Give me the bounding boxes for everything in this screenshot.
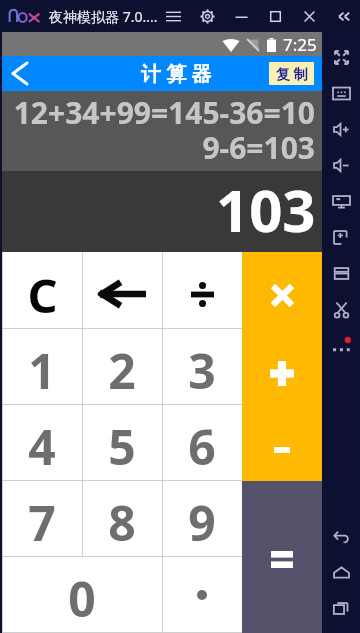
staticText: 0 [68,566,96,631]
button[interactable]: Screenshot [323,183,359,219]
button[interactable]: C [2,252,82,329]
staticText: 5 [108,414,136,479]
button[interactable]: Back [323,518,359,554]
staticText: 7:25 [283,33,317,56]
button[interactable]: 复 制 [269,62,314,85]
staticText: 7 [28,490,56,555]
button[interactable]: 1 [2,329,82,405]
button[interactable]: Home [323,554,359,590]
button[interactable]: 2 [82,329,162,405]
button[interactable]: Divide [162,252,242,329]
staticText: 计 算 器 [141,60,212,87]
button[interactable]: Minus [242,405,322,481]
button[interactable]: Back [2,56,37,91]
button[interactable]: 6 [162,405,242,481]
staticText: 12+34+99=145-36=10 9-6=103 [13,92,315,168]
button[interactable]: Install APK [323,219,359,255]
staticText: 3 [188,338,216,403]
button[interactable]: Fullscreen [323,39,359,75]
staticText: 1 [28,338,56,403]
button[interactable]: Recents [323,590,359,626]
button[interactable]: 8 [82,481,162,557]
button[interactable]: 7 [2,481,82,557]
button[interactable]: Collapse sidebar [326,0,360,32]
staticText: 2 [108,338,136,403]
button[interactable]: 0 [2,557,162,633]
button[interactable]: 3 [162,329,242,405]
button[interactable]: Maximize [258,0,292,32]
staticText: 103 [216,170,316,249]
button[interactable]: 4 [2,405,82,481]
button[interactable]: Cut [323,291,359,327]
staticText: 8 [108,490,136,555]
button[interactable]: File manager [323,255,359,291]
button[interactable]: Settings [190,0,224,32]
staticText: 9 [188,490,216,555]
button[interactable]: Keyboard [323,75,359,111]
button[interactable]: Backspace [82,252,162,329]
button[interactable]: Equals [242,481,322,633]
button[interactable]: Multiply [242,252,322,329]
button[interactable]: Decimal point [162,557,242,633]
button[interactable]: Volume down [323,147,359,183]
button[interactable]: Plus [242,329,322,405]
staticText: 夜神模拟器 7.0.... [49,7,158,26]
button[interactable]: 5 [82,405,162,481]
button[interactable]: Close [292,0,326,32]
button[interactable]: 9 [162,481,242,557]
staticText: 4 [28,414,56,479]
button[interactable]: More [323,327,359,363]
button[interactable]: Volume up [323,111,359,147]
staticText: 6 [188,414,216,479]
button[interactable]: Menu [156,0,190,32]
staticText: C [27,263,58,327]
staticText: 复 制 [276,64,308,83]
button[interactable]: Minimize [224,0,258,32]
